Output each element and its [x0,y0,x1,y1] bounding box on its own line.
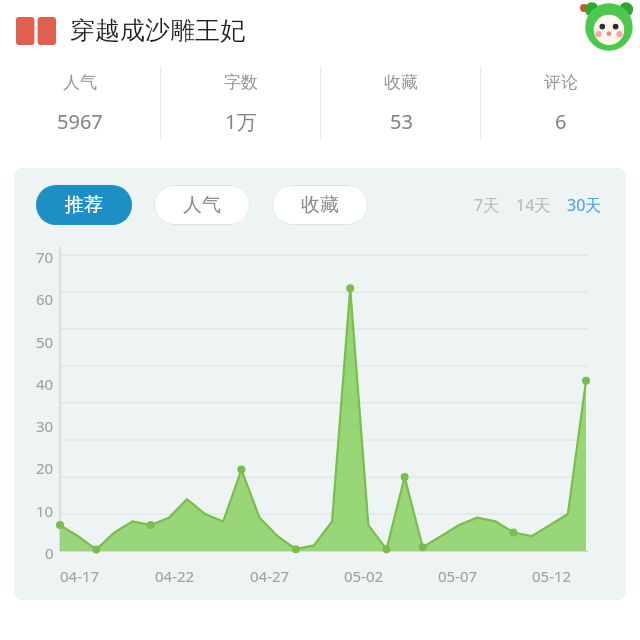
staticText: 1万 [225,108,257,135]
button[interactable]: 14天 [514,189,553,221]
staticText: 40 [36,374,54,390]
staticText: 7天 [474,194,500,216]
staticText: 6 [555,108,567,135]
staticText: 10 [36,501,54,517]
staticText: 60 [36,289,54,305]
staticText: 70 [36,247,54,263]
staticText: 评论 [544,72,578,93]
staticText: 收藏 [384,72,418,93]
staticText: 04-17 [60,566,100,586]
staticText: 53 [390,108,413,135]
staticText: 04-27 [250,566,290,586]
staticText: 20 [36,458,54,474]
staticText: 字数 [224,72,258,93]
staticText: 05-02 [344,566,384,586]
staticText: 穿越成沙雕王妃 [70,15,245,46]
button[interactable]: 30天 [565,189,604,221]
staticText: 50 [36,332,54,348]
button[interactable]: 推荐 [36,185,132,225]
staticText: 人气 [183,193,221,217]
staticText: 30 [36,416,54,432]
staticText: 收藏 [301,193,339,217]
staticText: 30天 [567,194,602,216]
button[interactable]: 收藏 [272,185,368,225]
staticText: 14天 [516,194,551,216]
button[interactable]: 7天 [472,189,502,221]
staticText: 0 [45,543,54,559]
other: Mascot [572,0,638,54]
staticText: 推荐 [65,193,103,217]
button[interactable]: 人气 [154,185,250,225]
staticText: 05-07 [438,566,478,586]
staticText: 人气 [63,72,97,93]
staticText: 04-22 [155,566,195,586]
staticText: 05-12 [532,566,572,586]
staticText: 5967 [57,108,103,135]
